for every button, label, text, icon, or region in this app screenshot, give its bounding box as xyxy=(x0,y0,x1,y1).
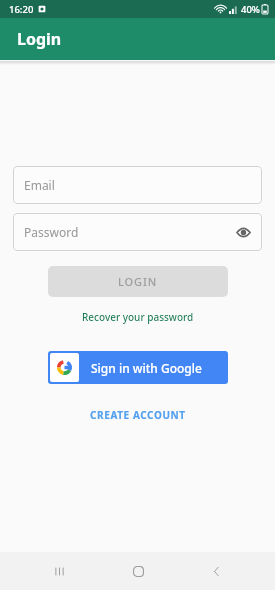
button[interactable]: Password xyxy=(13,213,262,251)
staticText: Recover your password xyxy=(82,310,194,324)
button[interactable]: LOGIN xyxy=(48,266,228,297)
button[interactable]: CREATE ACCOUNT xyxy=(82,405,194,425)
button[interactable]: Home xyxy=(118,552,158,590)
button[interactable]: Show password xyxy=(232,221,254,243)
button[interactable]: Recent apps xyxy=(39,552,79,590)
staticText: CREATE ACCOUNT xyxy=(90,408,186,422)
staticText: LOGIN xyxy=(118,274,158,289)
staticText: 16:20 xyxy=(9,3,34,16)
button[interactable]: Back xyxy=(196,552,236,590)
staticText: Login xyxy=(17,28,62,50)
staticText: Email xyxy=(24,177,55,193)
staticText: 40% xyxy=(241,3,260,16)
button[interactable]: Sign in with Google xyxy=(48,351,228,384)
staticText: Sign in with Google xyxy=(91,360,202,376)
staticText: Password xyxy=(24,224,79,240)
button[interactable]: Recover your password xyxy=(76,308,200,326)
button[interactable]: Email xyxy=(13,166,262,204)
